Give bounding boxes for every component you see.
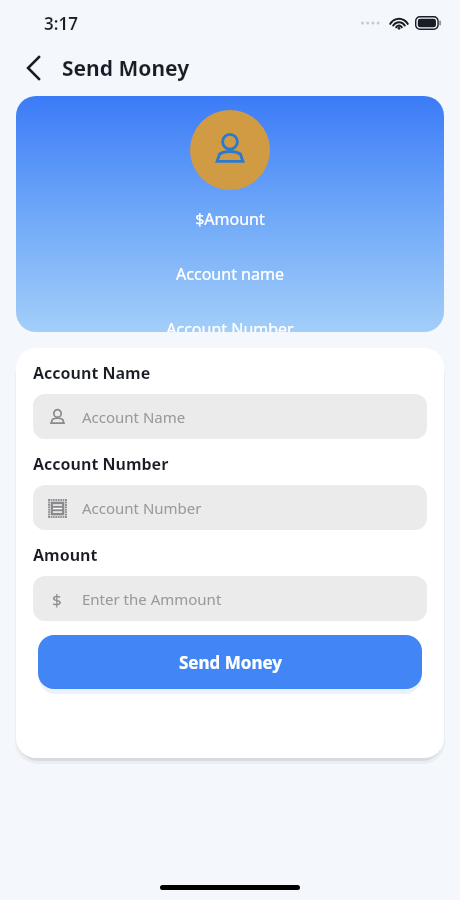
staticText: Send Money xyxy=(179,651,282,674)
staticText: $ xyxy=(52,588,62,610)
button[interactable]: Account Number xyxy=(33,485,427,530)
staticText: 3:17 xyxy=(44,12,78,35)
button[interactable]: $Amount xyxy=(16,96,444,332)
staticText: Amount xyxy=(33,544,98,566)
staticText: Account Name xyxy=(82,407,186,427)
button[interactable]: Send Money xyxy=(38,635,422,689)
staticText: Account name xyxy=(176,263,284,285)
staticText: Account Name xyxy=(33,362,151,384)
staticText: Enter the Ammount xyxy=(82,589,222,609)
button[interactable]: Back xyxy=(14,49,52,87)
button[interactable]: $ xyxy=(33,576,427,621)
staticText: Account Number xyxy=(166,318,294,332)
button[interactable]: Account Name xyxy=(33,394,427,439)
staticText: Account Number xyxy=(33,453,169,475)
staticText: $Amount xyxy=(195,208,265,230)
staticText: Account Number xyxy=(82,498,202,518)
staticText: Send Money xyxy=(62,54,190,83)
